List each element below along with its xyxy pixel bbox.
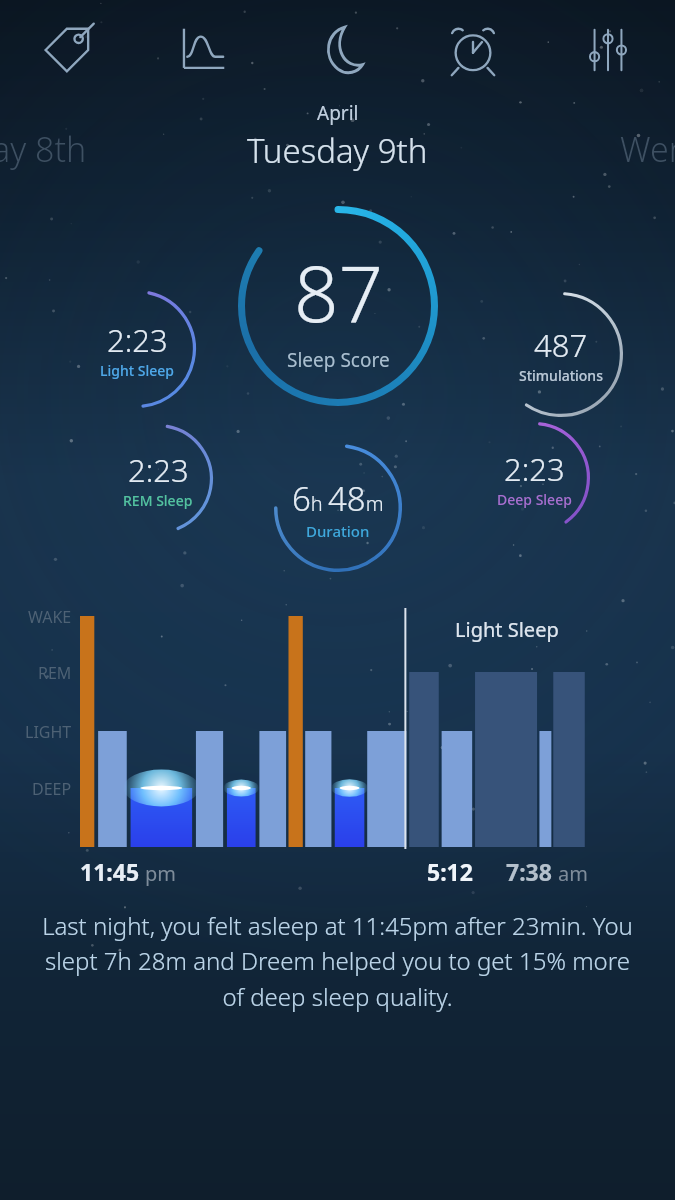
- button[interactable]: 487: [498, 292, 623, 417]
- staticText: Last night, you felt asleep at 11:45pm a…: [42, 909, 633, 1013]
- button[interactable]: 87: [238, 206, 438, 406]
- staticText: 2:23: [128, 449, 189, 491]
- staticText: Light Sleep: [455, 616, 559, 643]
- button[interactable]: Settings: [540, 0, 675, 100]
- button[interactable]: 2:23: [78, 290, 196, 408]
- staticText: 2:23: [504, 448, 565, 490]
- staticText: Light Sleep: [100, 361, 174, 380]
- button[interactable]: Statistics: [135, 0, 270, 100]
- button[interactable]: 2:23: [478, 422, 590, 534]
- staticText: Tuesday 9th: [247, 128, 428, 173]
- staticText: 87: [294, 239, 384, 345]
- button[interactable]: 6h 48m: [274, 444, 402, 572]
- staticText: 487: [534, 324, 588, 366]
- staticText: LIGHT: [25, 721, 72, 743]
- staticText: April: [317, 100, 359, 126]
- staticText: 7:38 am: [506, 856, 588, 887]
- button[interactable]: Sleep: [270, 0, 405, 100]
- staticText: WAKE: [28, 606, 72, 628]
- staticText: 6h 48m: [292, 476, 384, 521]
- button[interactable]: Tag: [0, 0, 135, 100]
- button[interactable]: Alarm: [405, 0, 540, 100]
- staticText: Wen: [620, 126, 675, 172]
- staticText: Sleep Score: [287, 347, 390, 373]
- staticText: Deep Sleep: [497, 490, 572, 509]
- button[interactable]: April: [247, 100, 428, 173]
- staticText: 5:12: [427, 856, 473, 887]
- staticText: Duration: [306, 521, 370, 541]
- button[interactable]: 2:23: [103, 424, 213, 534]
- staticText: 11:45 pm: [80, 856, 177, 887]
- staticText: REM Sleep: [123, 491, 193, 510]
- staticText: ay 8th: [0, 126, 87, 172]
- staticText: DEEP: [32, 778, 72, 800]
- staticText: Stimulations: [519, 366, 603, 385]
- staticText: REM: [38, 662, 72, 684]
- staticText: 2:23: [107, 319, 168, 361]
